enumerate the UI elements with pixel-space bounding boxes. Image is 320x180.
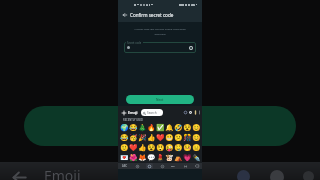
staticText: 😂 bbox=[120, 134, 129, 142]
staticText: 😑 bbox=[192, 144, 201, 152]
staticText: 💬 bbox=[147, 154, 156, 162]
button[interactable]: 🎄 bbox=[138, 123, 147, 133]
staticText: GIF bbox=[171, 165, 175, 168]
button[interactable]: ABC bbox=[122, 164, 128, 168]
button[interactable]: 💬 bbox=[147, 153, 156, 163]
button[interactable]: Symbols bbox=[182, 163, 188, 169]
staticText: 🔔 bbox=[165, 124, 174, 132]
button[interactable]: 😲 bbox=[156, 143, 165, 153]
staticText: 🌍 bbox=[120, 124, 129, 132]
staticText: 😬 bbox=[165, 134, 174, 142]
button[interactable]: Backspace bbox=[194, 163, 200, 169]
staticText: 🦊 bbox=[138, 154, 147, 162]
staticText: Secret code bbox=[127, 41, 142, 45]
button[interactable]: 👍 bbox=[138, 143, 147, 153]
button[interactable]: 🦊 bbox=[138, 153, 147, 163]
staticText: 😊 bbox=[192, 134, 201, 142]
button[interactable]: GIF bbox=[183, 110, 188, 115]
staticText: 🙂 bbox=[120, 144, 129, 152]
staticText: 🌺 bbox=[129, 154, 138, 162]
button[interactable]: 😵 bbox=[183, 123, 192, 133]
staticText: 🐮 bbox=[165, 154, 174, 162]
button[interactable]: 🌍 bbox=[119, 123, 129, 133]
button[interactable]: 😊 bbox=[192, 123, 201, 133]
button[interactable]: Add sticker bbox=[120, 109, 127, 116]
button[interactable]: More options bbox=[197, 110, 201, 114]
staticText: 😂 bbox=[129, 124, 138, 132]
staticText: 💄 bbox=[156, 154, 165, 162]
button[interactable]: ❤️ bbox=[156, 133, 165, 143]
button[interactable]: 😕 bbox=[174, 133, 183, 143]
button[interactable]: Microphone bbox=[193, 110, 197, 114]
staticText: 🤒 bbox=[183, 144, 192, 152]
staticText: 🤣 bbox=[174, 124, 183, 132]
staticText: Search bbox=[147, 111, 157, 115]
button[interactable]: 😂 bbox=[129, 123, 138, 133]
staticText: 😲 bbox=[156, 144, 165, 152]
button[interactable]: 🌺 bbox=[129, 153, 138, 163]
button[interactable]: 🥳 bbox=[129, 133, 138, 143]
button[interactable]: 😵 bbox=[147, 143, 156, 153]
staticText: 😊 bbox=[192, 124, 201, 132]
button[interactable]: 🙂 bbox=[119, 143, 129, 153]
staticText: RECENTLY USED bbox=[123, 118, 143, 122]
button[interactable]: Search bbox=[141, 109, 163, 116]
button[interactable]: 🎊 bbox=[183, 133, 192, 143]
button[interactable]: Back bbox=[120, 10, 129, 19]
button[interactable]: ✅ bbox=[156, 123, 165, 133]
staticText: 🥳 bbox=[129, 134, 138, 142]
button[interactable] bbox=[124, 42, 196, 53]
button[interactable]: ❤️ bbox=[129, 143, 138, 153]
button[interactable]: 💗 bbox=[183, 153, 192, 163]
staticText: 💗 bbox=[183, 154, 192, 162]
button[interactable]: 🐮 bbox=[165, 153, 174, 163]
staticText: 👍 bbox=[147, 134, 156, 142]
staticText: 🎊 bbox=[183, 134, 192, 142]
staticText: 🎉 bbox=[138, 134, 147, 142]
button[interactable]: Recently used bbox=[134, 163, 140, 169]
button[interactable]: Settings bbox=[188, 110, 193, 115]
staticText: 😕 bbox=[174, 134, 183, 142]
button[interactable]: Smileys bbox=[146, 163, 153, 169]
staticText: ❤️ bbox=[156, 134, 165, 142]
button[interactable]: 🔔 bbox=[165, 123, 174, 133]
staticText: 🔥 bbox=[147, 124, 156, 132]
staticText: A secret code lets you find locked chats… bbox=[134, 27, 186, 35]
button[interactable]: 👍 bbox=[147, 133, 156, 143]
staticText: 😵 bbox=[183, 124, 192, 132]
button[interactable]: 😜 bbox=[165, 143, 174, 153]
staticText: ⛺ bbox=[174, 154, 183, 162]
button[interactable]: 🤤 bbox=[174, 143, 183, 153]
button[interactable]: 🔥 bbox=[147, 123, 156, 133]
staticText: Next bbox=[156, 98, 164, 102]
button[interactable]: 😊 bbox=[192, 133, 201, 143]
button[interactable]: 😑 bbox=[192, 143, 201, 153]
staticText: 💌 bbox=[120, 154, 129, 162]
button[interactable]: GIF bbox=[170, 163, 176, 169]
staticText: 🤤 bbox=[174, 144, 183, 152]
button[interactable]: 🎉 bbox=[138, 133, 147, 143]
button[interactable]: 💌 bbox=[119, 153, 129, 163]
staticText: ABC bbox=[122, 164, 128, 168]
button[interactable]: 💄 bbox=[156, 153, 165, 163]
staticText: Confirm secret code bbox=[130, 12, 174, 18]
staticText: 😜 bbox=[165, 144, 174, 152]
staticText: 👍 bbox=[138, 144, 147, 152]
button[interactable]: Animals and nature bbox=[159, 163, 165, 169]
staticText: Emoji bbox=[128, 110, 138, 115]
button[interactable]: ✒️ bbox=[192, 153, 201, 163]
staticText: Emoji bbox=[44, 166, 81, 180]
button[interactable]: ⛺ bbox=[174, 153, 183, 163]
staticText: 🎄 bbox=[138, 124, 147, 132]
staticText: ✒️ bbox=[192, 154, 201, 162]
button[interactable]: 😬 bbox=[165, 133, 174, 143]
button[interactable]: Next bbox=[126, 95, 194, 104]
button[interactable]: 🤒 bbox=[183, 143, 192, 153]
button[interactable]: 🤣 bbox=[174, 123, 183, 133]
staticText: 😵 bbox=[147, 144, 156, 152]
staticText: ❤️ bbox=[129, 144, 138, 152]
button[interactable]: 😂 bbox=[119, 133, 129, 143]
staticText: ✅ bbox=[156, 124, 165, 132]
